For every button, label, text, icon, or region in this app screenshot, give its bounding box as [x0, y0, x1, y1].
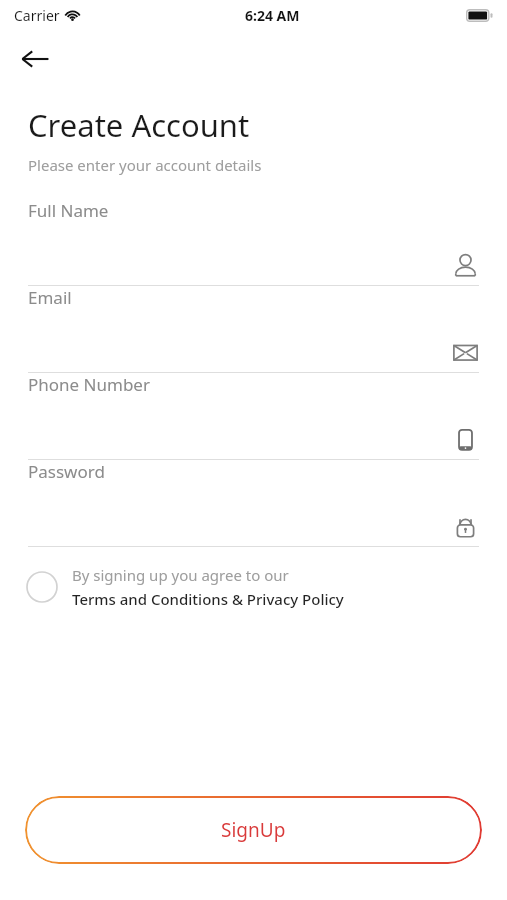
staticText: By signing up you agree to our — [72, 565, 289, 585]
button[interactable]: By signing up you agree to our — [26, 559, 481, 615]
staticText: SignUp — [221, 817, 286, 843]
staticText: Phone Number — [28, 373, 150, 396]
button[interactable]: Email — [0, 286, 507, 373]
button[interactable]: Back — [8, 32, 62, 86]
staticText: Create Account — [28, 104, 250, 146]
button[interactable]: SignUp — [25, 796, 482, 864]
button[interactable]: Phone Number — [0, 373, 507, 460]
staticText: Email — [28, 286, 72, 309]
staticText: 6:24 AM — [245, 6, 300, 25]
button[interactable]: Password — [0, 460, 507, 547]
staticText: Carrier — [14, 6, 60, 25]
button[interactable]: Full Name — [0, 199, 507, 286]
staticText: Full Name — [28, 199, 109, 222]
staticText: Please enter your account details — [28, 155, 262, 175]
staticText: Password — [28, 460, 105, 483]
staticText: Terms and Conditions & Privacy Policy — [72, 589, 344, 609]
